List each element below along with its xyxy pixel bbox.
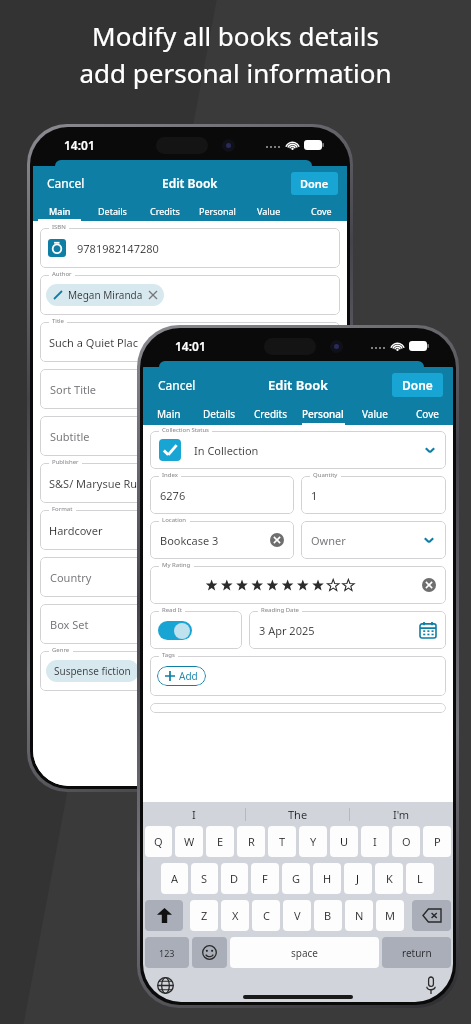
button[interactable]: M [376, 900, 404, 931]
button[interactable]: R [237, 826, 265, 857]
button[interactable]: Suspense fiction [40, 651, 340, 691]
button[interactable]: S [191, 863, 218, 894]
button[interactable]: Change keyboard language [157, 977, 174, 994]
button[interactable]: C [252, 900, 280, 931]
staticText: Collection Status [162, 426, 209, 434]
staticText: D [230, 871, 239, 886]
button[interactable]: Cove [401, 403, 453, 425]
staticText: The [288, 807, 308, 822]
staticText: add personal information [79, 55, 392, 90]
button[interactable]: In Collection [150, 431, 446, 469]
button[interactable]: D [221, 863, 248, 894]
staticText: S&S/ Marysue Ru [49, 476, 138, 491]
button[interactable]: Personal [297, 403, 349, 425]
button[interactable]: Owner [301, 521, 446, 559]
button[interactable]: P [423, 826, 451, 857]
button[interactable]: return [382, 937, 451, 968]
button[interactable]: I [143, 802, 245, 826]
button[interactable]: V [283, 900, 311, 931]
button[interactable]: 6276 [150, 476, 294, 514]
button[interactable]: Megan Miranda [40, 275, 340, 315]
staticText: Z [201, 908, 208, 923]
button[interactable]: Hardcover [40, 510, 340, 550]
button[interactable]: 1 [301, 476, 446, 514]
button[interactable] [150, 611, 242, 649]
staticText: Cove [416, 407, 439, 421]
button[interactable]: O [392, 826, 420, 857]
button[interactable]: 9781982147280 [40, 228, 340, 268]
button[interactable] [150, 566, 446, 604]
button[interactable]: Credits [245, 403, 297, 425]
staticText: Quantity [313, 471, 338, 479]
button[interactable]: T [268, 826, 296, 857]
button[interactable]: Details [86, 200, 139, 221]
button[interactable]: Such a Quiet Plac [40, 322, 340, 362]
button[interactable]: Done [392, 373, 443, 397]
button[interactable]: space [230, 937, 379, 968]
staticText: Value [257, 205, 281, 217]
button[interactable]: Bookcase 3 [150, 521, 294, 559]
button[interactable]: N [345, 900, 373, 931]
button[interactable]: Q [145, 826, 172, 857]
button[interactable]: E [206, 826, 234, 857]
button[interactable]: Cancel [156, 373, 198, 397]
staticText: Index [162, 471, 178, 479]
button[interactable]: Dictation [425, 977, 437, 994]
button[interactable]: Credits [139, 200, 191, 221]
staticText: Q [154, 834, 163, 849]
button[interactable]: Sort Title [40, 369, 340, 409]
button[interactable]: Cancel [45, 171, 87, 195]
button[interactable]: Details [194, 403, 245, 425]
staticText: Add [179, 669, 198, 683]
button[interactable]: Add [157, 666, 206, 686]
button[interactable]: Subtitle [40, 416, 340, 456]
staticText: Author [52, 270, 72, 278]
staticText: Cancel [47, 175, 85, 191]
staticText: Credits [150, 205, 180, 217]
staticText: A [171, 871, 179, 886]
button[interactable]: A [161, 863, 188, 894]
button[interactable]: Value [243, 200, 295, 221]
button[interactable]: Personal [191, 200, 243, 221]
button[interactable]: X [221, 900, 249, 931]
button[interactable]: Done [291, 172, 338, 195]
button[interactable]: I'm [350, 802, 453, 826]
button[interactable]: Main [33, 200, 86, 221]
button[interactable]: S&S/ Marysue Ru [40, 463, 340, 503]
button[interactable]: H [313, 863, 341, 894]
button[interactable]: Megan Miranda [46, 284, 164, 306]
button[interactable]: Z [190, 900, 218, 931]
button[interactable]: B [314, 900, 342, 931]
staticText: Read It [162, 606, 182, 614]
staticText: 9781982147280 [77, 241, 159, 256]
button[interactable]: Box Set [40, 604, 340, 644]
staticText: Owner [311, 533, 346, 548]
button[interactable]: The [246, 802, 349, 826]
button[interactable]: U [330, 826, 358, 857]
button[interactable]: Value [349, 403, 401, 425]
button[interactable]: K [375, 863, 403, 894]
button[interactable] [158, 621, 192, 640]
button[interactable] [412, 900, 451, 931]
button[interactable]: Suspense fiction [46, 660, 139, 682]
button[interactable]: 3 Apr 2025 [249, 611, 446, 649]
button[interactable]: Main [143, 403, 194, 425]
button[interactable]: Country [40, 557, 340, 597]
staticText: Such a Quiet Plac [49, 335, 139, 350]
button[interactable] [145, 900, 183, 931]
staticText: Details [98, 205, 127, 217]
staticText: Cancel [158, 377, 196, 393]
button[interactable]: W [175, 826, 203, 857]
staticText: Suspense fiction [54, 664, 131, 678]
button[interactable] [192, 937, 227, 968]
staticText: B [324, 908, 332, 923]
button[interactable]: L [406, 863, 434, 894]
button[interactable]: F [251, 863, 279, 894]
button[interactable]: G [282, 863, 310, 894]
button[interactable]: Add [150, 656, 446, 696]
button[interactable]: J [344, 863, 372, 894]
button[interactable]: Cove [295, 200, 347, 221]
button[interactable]: 123 [145, 937, 189, 968]
button[interactable]: Y [299, 826, 327, 857]
button[interactable]: I [361, 826, 389, 857]
